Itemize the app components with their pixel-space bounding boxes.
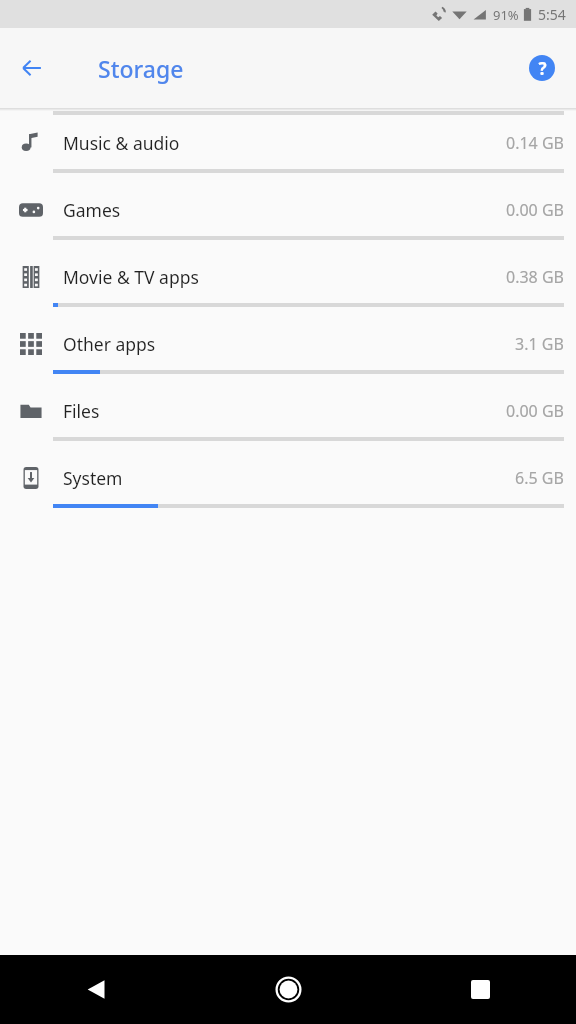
staticText: 3.1 GB — [515, 333, 564, 355]
staticText: 0.14 GB — [506, 132, 564, 154]
staticText: 91% — [493, 6, 519, 24]
button[interactable]: Back — [0, 955, 192, 1024]
button[interactable]: Recent apps — [384, 955, 576, 1024]
button[interactable]: Home — [192, 955, 384, 1024]
staticText: Storage — [98, 53, 184, 84]
button[interactable]: Games — [0, 184, 576, 251]
staticText: 6.5 GB — [515, 467, 564, 489]
staticText: Music & audio — [63, 131, 506, 155]
staticText: Movie & TV apps — [63, 265, 506, 289]
staticText: 0.00 GB — [506, 199, 564, 221]
button[interactable]: Files — [0, 385, 576, 452]
button[interactable]: Music & audio — [0, 117, 576, 184]
button[interactable]: Movie & TV apps — [0, 251, 576, 318]
staticText: Other apps — [63, 332, 515, 356]
staticText: System — [63, 466, 515, 490]
staticText: ? — [538, 57, 547, 80]
button[interactable]: Other apps — [0, 318, 576, 385]
staticText: 0.38 GB — [506, 266, 564, 288]
button[interactable]: Back — [8, 44, 56, 92]
staticText: Files — [63, 399, 506, 423]
button[interactable]: System — [0, 452, 576, 519]
button[interactable]: Help — [518, 44, 566, 92]
staticText: 0.00 GB — [506, 400, 564, 422]
staticText: 5:54 — [538, 5, 566, 24]
staticText: Games — [63, 198, 506, 222]
